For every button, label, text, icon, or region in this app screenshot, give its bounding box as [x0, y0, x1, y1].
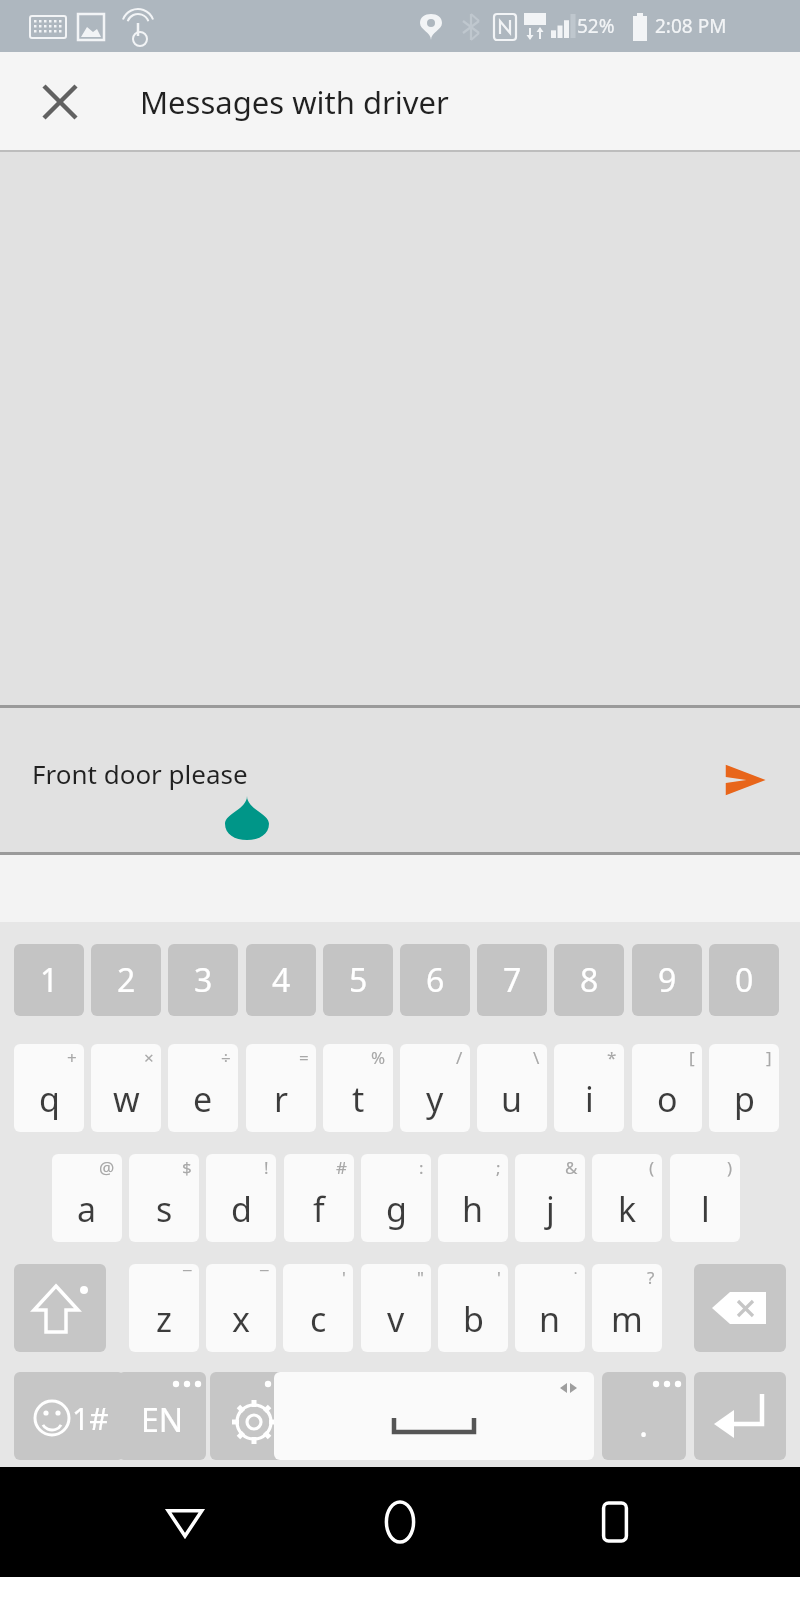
staticText: ( [649, 1156, 655, 1179]
staticText: w [113, 1076, 140, 1122]
staticText: Messages with driver [140, 81, 449, 123]
staticText: = [299, 1046, 309, 1069]
staticText: [ [689, 1046, 695, 1069]
button[interactable]: * [554, 1044, 624, 1132]
staticText: v [387, 1296, 405, 1342]
staticText: b [463, 1296, 484, 1342]
staticText: : [419, 1156, 424, 1179]
button[interactable]: 9 [632, 944, 702, 1016]
button[interactable]: + [14, 1044, 84, 1132]
button[interactable]: @ [52, 1154, 122, 1242]
staticText: h [462, 1186, 484, 1232]
button[interactable]: ‾ [129, 1264, 199, 1352]
button[interactable]: $ [129, 1154, 199, 1242]
staticText: m [611, 1296, 643, 1342]
staticText: 2 [117, 958, 136, 1002]
button[interactable]: Enter [694, 1372, 786, 1460]
button[interactable]: ? [592, 1264, 662, 1352]
button[interactable]: 5 [323, 944, 393, 1016]
staticText: ! [264, 1156, 269, 1179]
button[interactable]: / [400, 1044, 470, 1132]
button[interactable]: Period [602, 1372, 686, 1460]
staticText: ' [497, 1266, 501, 1289]
button[interactable]: 2 [91, 944, 161, 1016]
button[interactable]: [ [632, 1044, 702, 1132]
button[interactable]: ] [709, 1044, 779, 1132]
button[interactable]: ; [438, 1154, 508, 1242]
staticText: 1# [72, 1398, 109, 1439]
button[interactable]: % [323, 1044, 393, 1132]
staticText: ˙ [574, 1266, 578, 1289]
button[interactable]: & [515, 1154, 585, 1242]
staticText: 1 [40, 958, 59, 1002]
button[interactable]: ÷ [168, 1044, 238, 1132]
button[interactable]: Language [118, 1372, 206, 1460]
staticText: + [67, 1046, 77, 1069]
button[interactable]: ! [206, 1154, 276, 1242]
staticText: & [565, 1156, 578, 1179]
button[interactable]: Recents [570, 1477, 660, 1567]
button[interactable]: 1 [14, 944, 84, 1016]
staticText: 8 [580, 958, 599, 1002]
staticText: p [734, 1076, 755, 1122]
staticText: EN [141, 1398, 184, 1442]
staticText: 7 [503, 958, 522, 1002]
button[interactable]: 8 [554, 944, 624, 1016]
staticText: # [336, 1156, 347, 1179]
staticText: % [371, 1046, 386, 1069]
button[interactable]: 3 [168, 944, 238, 1016]
staticText: n [539, 1296, 561, 1342]
staticText: j [546, 1186, 555, 1232]
staticText: g [386, 1186, 407, 1232]
staticText: $ [182, 1156, 192, 1179]
staticText: 4 [272, 958, 291, 1002]
button[interactable]: ( [592, 1154, 662, 1242]
button[interactable]: Backspace [694, 1264, 786, 1352]
button[interactable]: 7 [477, 944, 547, 1016]
staticText: * [607, 1046, 617, 1069]
staticText: " [417, 1266, 424, 1289]
staticText: 6 [426, 958, 445, 1002]
button[interactable]: Space [274, 1372, 594, 1460]
button[interactable]: Shift [14, 1264, 106, 1352]
button[interactable]: 0 [709, 944, 779, 1016]
staticText: k [618, 1186, 637, 1232]
button[interactable]: ) [670, 1154, 740, 1242]
staticText: ' [342, 1266, 346, 1289]
button[interactable]: Symbols [14, 1372, 124, 1460]
staticText: ] [766, 1046, 772, 1069]
staticText: f [313, 1186, 325, 1232]
button[interactable]: : [361, 1154, 431, 1242]
button[interactable]: ˙ [515, 1264, 585, 1352]
staticText: a [77, 1186, 97, 1232]
staticText: / [456, 1046, 463, 1069]
staticText: @ [99, 1156, 115, 1179]
button[interactable]: Settings [210, 1372, 298, 1460]
button[interactable]: # [284, 1154, 354, 1242]
button[interactable]: 6 [400, 944, 470, 1016]
staticText: e [193, 1076, 213, 1122]
button[interactable]: \ [477, 1044, 547, 1132]
button[interactable]: ‾ [206, 1264, 276, 1352]
button[interactable]: 4 [246, 944, 316, 1016]
button[interactable]: Send [708, 744, 780, 816]
staticText: 2:08 PM [655, 13, 727, 39]
button[interactable]: " [361, 1264, 431, 1352]
staticText: 9 [658, 958, 677, 1002]
button[interactable]: × [91, 1044, 161, 1132]
staticText: q [39, 1076, 60, 1122]
staticText: i [585, 1076, 594, 1122]
button[interactable]: Back [140, 1477, 230, 1567]
staticText: ‾ [183, 1266, 192, 1289]
staticText: r [274, 1076, 289, 1122]
staticText: y [426, 1076, 444, 1122]
button[interactable]: = [246, 1044, 316, 1132]
button[interactable]: ' [283, 1264, 353, 1352]
button[interactable]: ' [438, 1264, 508, 1352]
staticText: × [144, 1046, 154, 1069]
staticText: o [657, 1076, 678, 1122]
button[interactable]: Home [355, 1477, 445, 1567]
staticText: . [639, 1401, 649, 1447]
staticText: s [156, 1186, 173, 1232]
button[interactable]: Close [24, 66, 96, 138]
